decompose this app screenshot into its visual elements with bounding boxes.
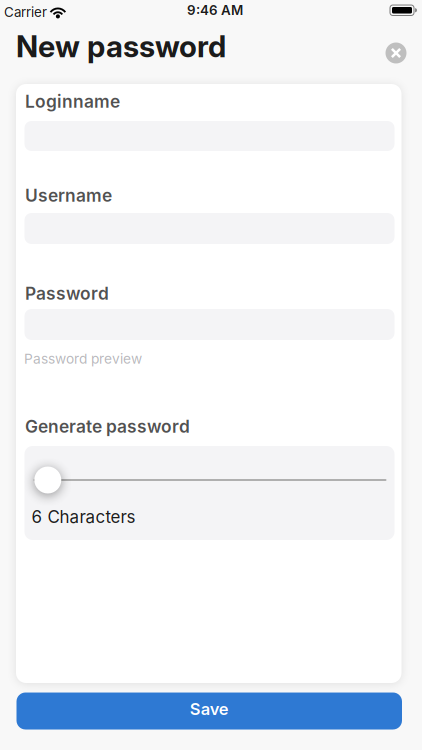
staticText: Password preview: [24, 350, 142, 367]
staticText: 9:46 AM: [187, 2, 243, 18]
staticText: Save: [190, 699, 229, 719]
staticText: Password: [25, 283, 109, 304]
staticText: Username: [25, 185, 112, 206]
button[interactable]: Save: [16, 692, 402, 729]
staticText: 6 Characters: [31, 506, 135, 527]
staticText: Generate password: [25, 416, 190, 437]
staticText: Carrier: [4, 4, 47, 20]
staticText: Loginname: [25, 91, 120, 112]
staticText: New password: [16, 28, 226, 64]
button[interactable]: Close: [381, 38, 411, 68]
